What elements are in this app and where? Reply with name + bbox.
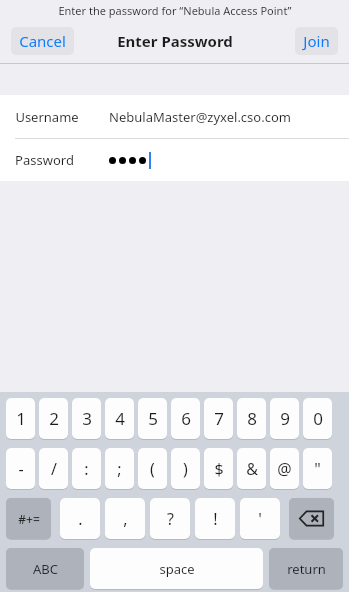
- staticText: .: [78, 508, 83, 530]
- button[interactable]: 7: [204, 398, 233, 440]
- button[interactable]: 6: [171, 398, 200, 440]
- button[interactable]: Backspace: [289, 498, 334, 540]
- staticText: ': [258, 508, 262, 530]
- staticText: Enter the password for “Nebula Access Po…: [58, 3, 292, 18]
- button[interactable]: 1: [6, 398, 35, 440]
- staticText: ): [183, 458, 188, 480]
- staticText: 6: [181, 407, 191, 430]
- staticText: Join: [303, 31, 330, 51]
- staticText: 7: [214, 407, 224, 430]
- button[interactable]: space: [90, 548, 263, 590]
- staticText: ,: [123, 508, 128, 530]
- staticText: space: [159, 560, 195, 578]
- staticText: 2: [49, 407, 59, 430]
- staticText: ": [314, 458, 321, 480]
- button[interactable]: .: [60, 498, 100, 540]
- staticText: Cancel: [19, 31, 66, 51]
- staticText: Enter Password: [117, 31, 233, 51]
- staticText: 4: [115, 407, 125, 430]
- button[interactable]: ,: [105, 498, 145, 540]
- button[interactable]: !: [195, 498, 235, 540]
- staticText: &: [246, 458, 258, 480]
- staticText: 1: [16, 407, 26, 430]
- button[interactable]: ": [303, 448, 332, 490]
- staticText: #+=: [18, 511, 40, 527]
- staticText: $: [214, 458, 224, 480]
- button[interactable]: 3: [72, 398, 101, 440]
- staticText: 0: [313, 407, 323, 430]
- button[interactable]: ;: [105, 448, 134, 490]
- button[interactable]: ': [240, 498, 280, 540]
- staticText: 8: [247, 407, 257, 430]
- button[interactable]: 0: [303, 398, 332, 440]
- staticText: ABC: [33, 560, 58, 578]
- button[interactable]: $: [204, 448, 233, 490]
- staticText: -: [18, 458, 24, 480]
- button[interactable]: ABC: [6, 548, 84, 590]
- button[interactable]: -: [6, 448, 35, 490]
- staticText: @: [277, 458, 292, 480]
- staticText: ?: [167, 508, 174, 530]
- staticText: 3: [82, 407, 92, 430]
- button[interactable]: #+=: [6, 498, 51, 540]
- button[interactable]: 9: [270, 398, 299, 440]
- button[interactable]: 5: [138, 398, 167, 440]
- button[interactable]: :: [72, 448, 101, 490]
- button[interactable]: 8: [237, 398, 266, 440]
- button[interactable]: 2: [39, 398, 68, 440]
- staticText: Username: [15, 108, 79, 126]
- button[interactable]: (: [138, 448, 167, 490]
- button[interactable]: 4: [105, 398, 134, 440]
- button[interactable]: &: [237, 448, 266, 490]
- button[interactable]: Username: [0, 95, 349, 138]
- staticText: return: [287, 560, 326, 578]
- button[interactable]: Join: [295, 27, 338, 55]
- staticText: :: [84, 458, 89, 480]
- staticText: NebulaMaster@zyxel.cso.com: [109, 108, 291, 126]
- staticText: ;: [117, 458, 122, 480]
- button[interactable]: ): [171, 448, 200, 490]
- staticText: 5: [148, 407, 158, 430]
- button[interactable]: ?: [150, 498, 190, 540]
- staticText: (: [150, 458, 155, 480]
- button[interactable]: Password: [0, 139, 349, 181]
- staticText: /: [51, 458, 57, 480]
- button[interactable]: @: [270, 448, 299, 490]
- staticText: Password: [15, 151, 74, 169]
- button[interactable]: Cancel: [11, 27, 74, 55]
- button[interactable]: return: [269, 548, 343, 590]
- staticText: 9: [280, 407, 290, 430]
- staticText: !: [213, 508, 218, 530]
- button[interactable]: /: [39, 448, 68, 490]
